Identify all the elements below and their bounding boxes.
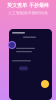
staticText: 人工智能助手随时待命	[8, 11, 48, 15]
staticText: 英文查单 手抄最终	[7, 2, 49, 9]
